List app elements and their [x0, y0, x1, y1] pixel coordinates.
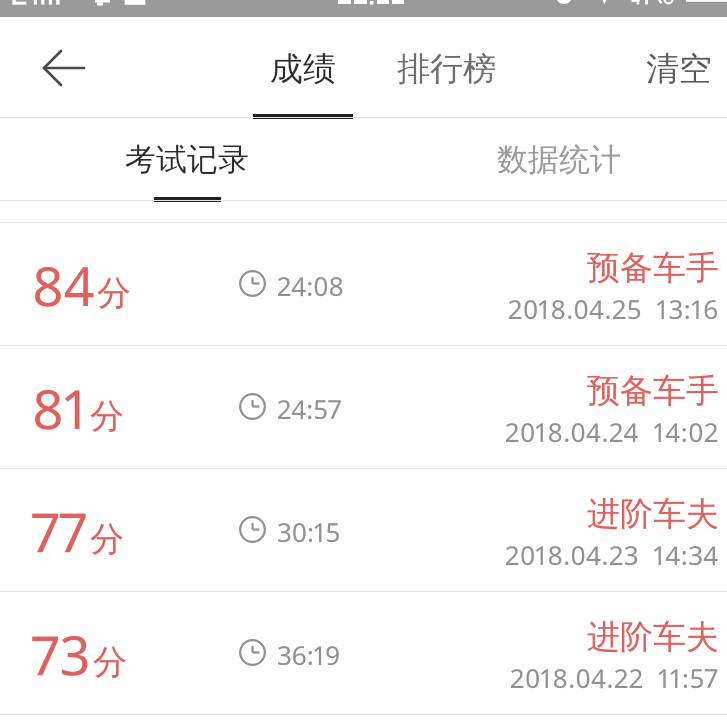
staticText: 2018.04.25 13:16: [508, 291, 719, 326]
staticText: 分: [90, 518, 124, 561]
button[interactable]: 排行榜: [390, 17, 502, 107]
staticText: 2018.04.24 14:02: [505, 414, 719, 449]
button[interactable]: 考试记录: [125, 117, 249, 200]
staticText: 进阶车夫: [587, 616, 719, 658]
staticText: 30:15: [277, 514, 341, 549]
staticText: 2018.04.22 11:57: [510, 660, 719, 695]
staticText: 分: [93, 641, 127, 684]
button[interactable]: 数据统计: [497, 117, 621, 200]
button[interactable]: Back: [20, 40, 80, 100]
staticText: 考试记录: [125, 140, 249, 179]
button[interactable]: 73: [0, 591, 727, 714]
staticText: 73: [32, 617, 91, 691]
staticText: 进阶车夫: [587, 493, 719, 535]
staticText: 成绩: [270, 48, 336, 90]
button[interactable]: 成绩: [253, 17, 353, 117]
staticText: 24:08: [277, 268, 344, 303]
staticText: 数据统计: [497, 140, 621, 179]
staticText: 清空: [646, 48, 712, 90]
staticText: 77: [32, 494, 88, 568]
button[interactable]: 84: [0, 222, 727, 345]
button[interactable]: 清空: [635, 17, 723, 107]
staticText: 24:57: [277, 391, 342, 426]
button[interactable]: 77: [0, 468, 727, 591]
staticText: 预备车手: [587, 370, 719, 412]
staticText: 分: [97, 272, 131, 315]
staticText: 分: [90, 395, 124, 438]
staticText: 排行榜: [397, 48, 496, 90]
staticText: 预备车手: [587, 247, 719, 289]
staticText: 2018.04.23 14:34: [505, 537, 719, 572]
staticText: 84: [32, 248, 95, 322]
staticText: 81: [32, 371, 88, 445]
staticText: 36:19: [277, 637, 341, 672]
button[interactable]: 81: [0, 345, 727, 468]
